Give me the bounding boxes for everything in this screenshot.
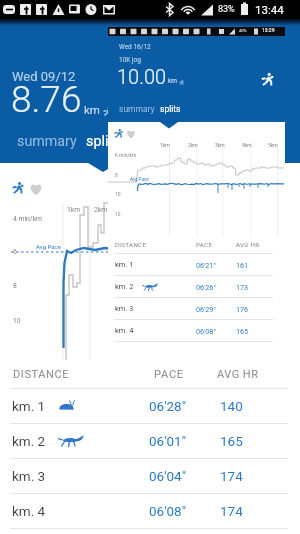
staticText: summary — [119, 104, 155, 114]
staticText: 2km — [94, 206, 108, 214]
staticText: PACE — [154, 368, 217, 381]
staticText: 3km — [215, 142, 225, 148]
button[interactable]: km. 3 — [0, 459, 300, 493]
staticText: 8 — [115, 172, 118, 178]
staticText: 06'28" — [149, 398, 220, 414]
staticText: 06'08" — [196, 327, 236, 335]
staticText: Wed 16/12 — [119, 43, 151, 51]
staticText: 161 — [236, 261, 249, 269]
staticText: 06'08" — [149, 503, 220, 519]
staticText: 10K jog — [119, 56, 141, 64]
staticText: 140 — [220, 398, 243, 414]
staticText: Avg Pace — [36, 243, 61, 250]
staticText: km. 2 — [115, 282, 134, 291]
staticText: splits — [160, 104, 181, 114]
staticText: km. 4 — [115, 326, 134, 335]
staticText: 40% — [239, 28, 247, 33]
staticText: 174 — [220, 503, 243, 519]
staticText: 165 — [220, 433, 243, 449]
staticText: 173 — [236, 283, 249, 291]
staticText: Avg Pace — [130, 177, 149, 182]
staticText: splits — [86, 133, 121, 150]
staticText: km — [168, 77, 177, 85]
button[interactable]: km. 1 — [108, 254, 285, 275]
button[interactable]: km. 2 — [0, 424, 300, 458]
staticText: 8 — [13, 282, 17, 290]
staticText: 6 — [13, 248, 17, 256]
staticText: 10.00 — [117, 65, 167, 88]
staticText: km — [84, 103, 100, 116]
staticText: 06'29" — [196, 305, 236, 313]
button[interactable]: summary — [119, 104, 181, 114]
staticText: DISTANCE — [115, 241, 196, 248]
staticText: 06'04" — [149, 468, 220, 484]
staticText: 4 min/km — [13, 215, 43, 223]
staticText: 1km — [160, 142, 170, 148]
staticText: AVG HR — [217, 368, 259, 381]
button[interactable]: km. 3 — [108, 298, 285, 319]
staticText: 2km — [188, 142, 198, 148]
button[interactable]: km. 2 — [108, 276, 285, 297]
staticText: 8.76 — [11, 78, 82, 121]
staticText: km. 4 — [12, 503, 46, 519]
staticText: AVG HR — [236, 241, 260, 248]
staticText: DISTANCE — [13, 368, 154, 381]
staticText: km. 1 — [12, 398, 46, 414]
staticText: 165 — [236, 327, 249, 335]
staticText: km. 2 — [12, 433, 46, 449]
button[interactable]: km. 1 — [0, 389, 300, 423]
button[interactable]: km. 4 — [0, 494, 300, 528]
button[interactable]: km. 4 — [108, 320, 285, 341]
staticText: 174 — [220, 468, 243, 484]
staticText: 06'21" — [196, 261, 236, 269]
staticText: 13:29 — [262, 27, 275, 33]
other: Status bar — [0, 0, 300, 19]
staticText: 4km — [242, 142, 252, 148]
staticText: 10 — [13, 317, 21, 325]
staticText: PACE — [196, 241, 236, 248]
staticText: 5km — [268, 142, 278, 148]
staticText: 13:44 — [255, 3, 284, 16]
staticText: summary — [17, 133, 77, 150]
staticText: Wed 09/12 — [12, 69, 76, 84]
staticText: 06'01" — [149, 433, 220, 449]
staticText: 176 — [236, 305, 249, 313]
staticText: km. 3 — [12, 468, 46, 484]
staticText: km. 3 — [115, 304, 134, 313]
staticText: 10 — [115, 191, 121, 197]
staticText: 12 — [115, 211, 121, 217]
staticText: 06'26" — [196, 283, 236, 291]
staticText: 1km — [67, 206, 81, 214]
staticText: 6 min/km — [115, 152, 137, 158]
staticText: km. 1 — [115, 260, 134, 269]
button[interactable]: summary — [17, 133, 121, 150]
staticText: 83% — [218, 4, 235, 15]
